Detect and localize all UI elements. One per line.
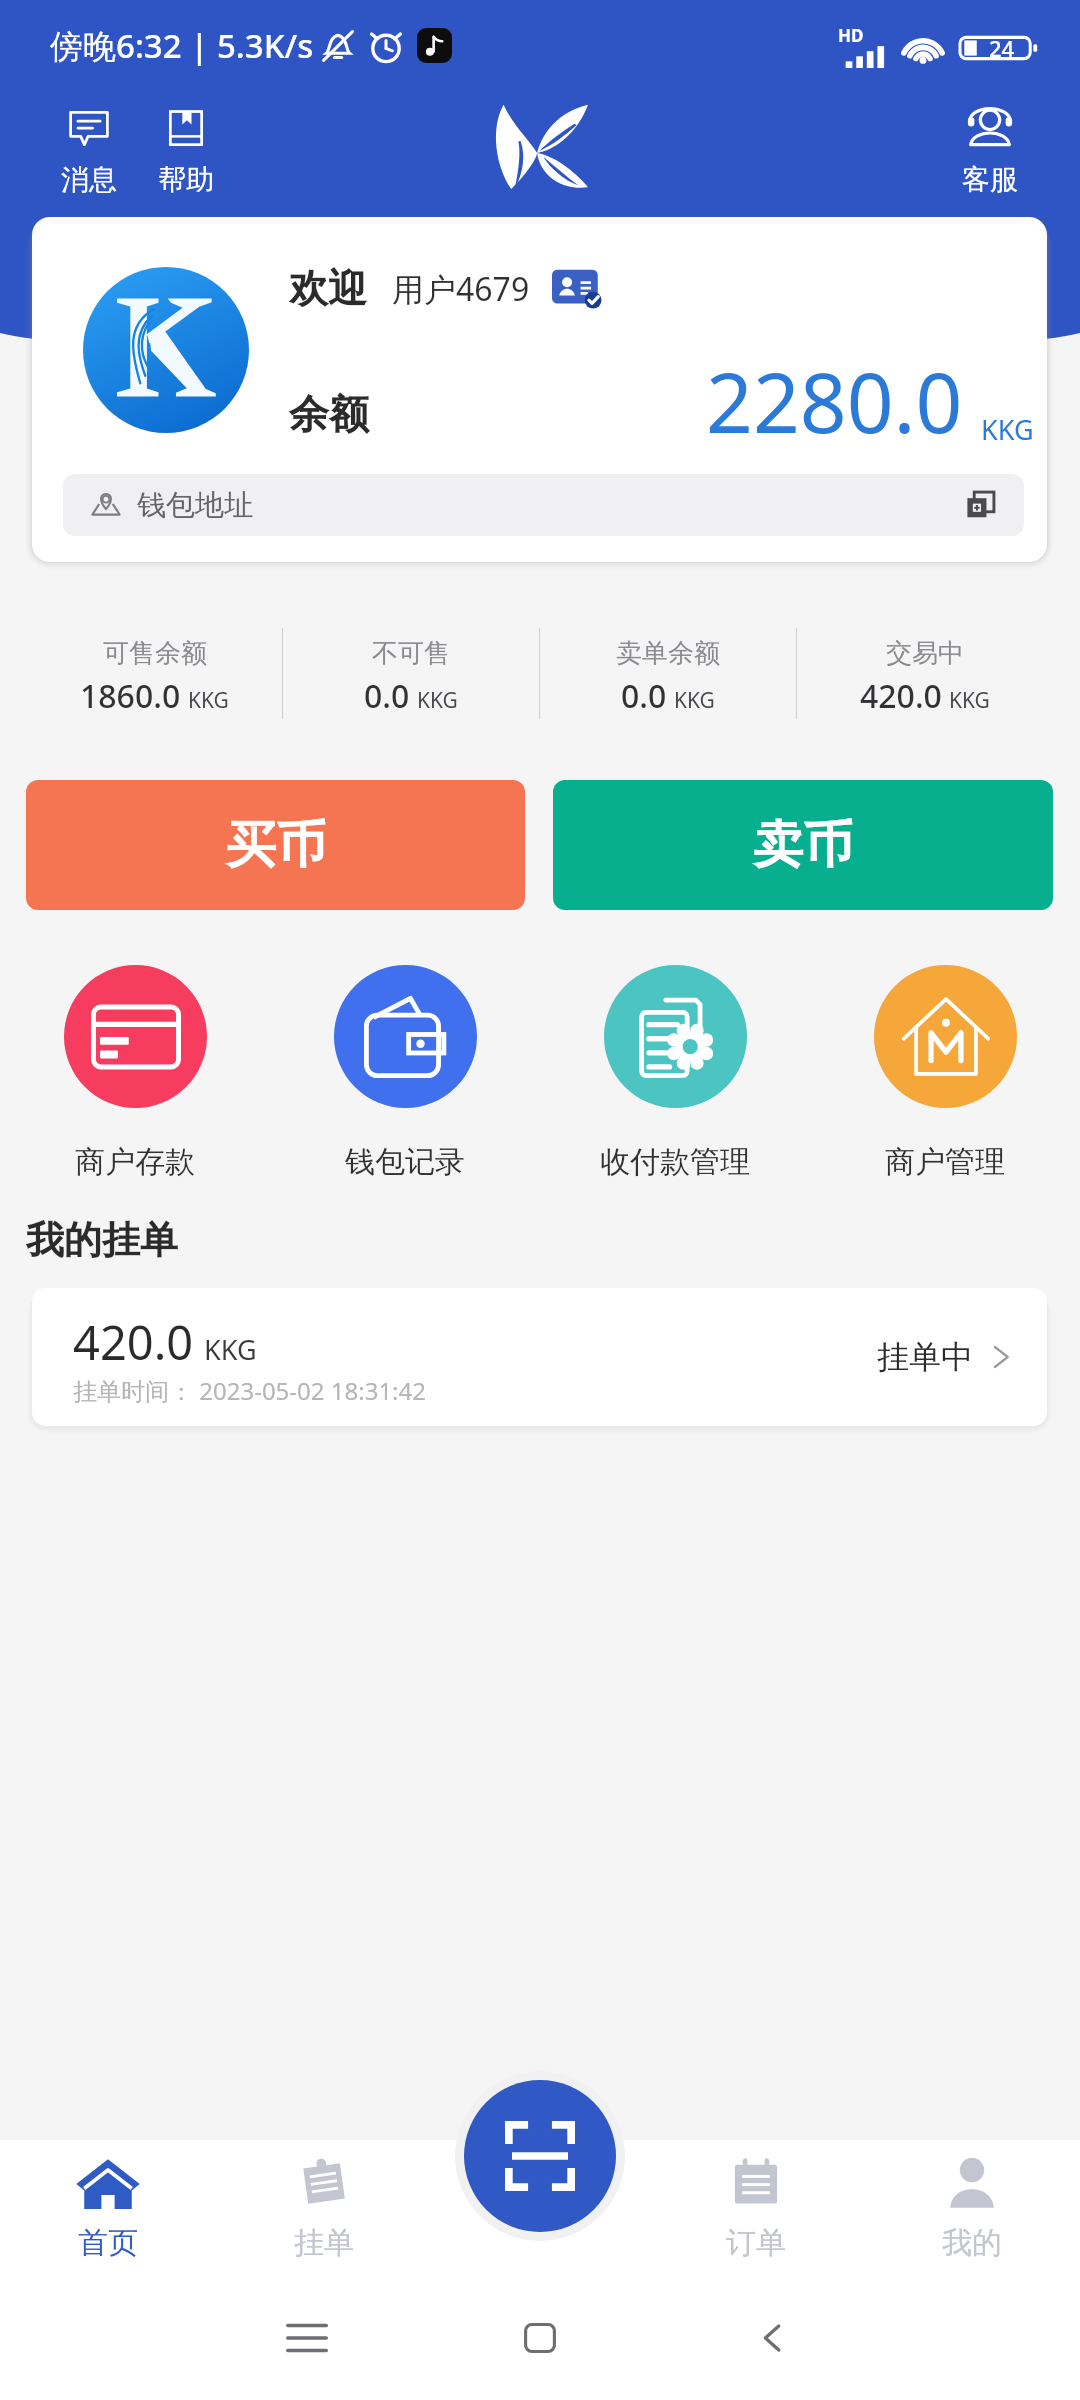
staticText: 钱包地址: [137, 487, 253, 524]
staticText: KKG: [674, 686, 715, 715]
other: Home: [516, 2314, 564, 2362]
staticText: 消息: [61, 162, 117, 197]
staticText: 420.0: [860, 674, 942, 718]
button[interactable]: 卖币: [553, 780, 1053, 910]
staticText: KKG: [188, 686, 229, 715]
staticText: 余额: [289, 389, 369, 439]
staticText: 挂单时间： 2023-05-02 18:31:42: [73, 1374, 426, 1407]
staticText: 帮助: [158, 162, 214, 197]
staticText: 420.0: [73, 1310, 194, 1374]
button[interactable]: 帮助: [156, 106, 216, 197]
staticText: 不可售: [372, 637, 450, 670]
button[interactable]: 420.0: [32, 1288, 1047, 1426]
other: Recents: [283, 2314, 331, 2362]
staticText: KKG: [417, 686, 458, 715]
button[interactable]: 订单: [648, 2140, 864, 2278]
staticText: 收付款管理: [600, 1143, 750, 1181]
staticText: KKG: [949, 686, 990, 715]
staticText: 0.0: [364, 674, 410, 718]
button[interactable]: 我的: [864, 2140, 1080, 2278]
staticText: 卖币: [753, 814, 853, 877]
button[interactable]: Scan QR code: [464, 2080, 616, 2232]
button[interactable]: 商户管理: [810, 965, 1080, 1181]
staticText: 钱包记录: [345, 1143, 465, 1181]
staticText: 用户4679: [392, 267, 530, 311]
button[interactable]: 钱包记录: [270, 965, 540, 1181]
staticText: 卖单余额: [616, 637, 720, 670]
staticText: 傍晚6:32 | 5.3K/s: [50, 23, 314, 68]
staticText: 2280.0: [706, 345, 963, 457]
staticText: 交易中: [886, 637, 964, 670]
staticText: KKG: [981, 411, 1034, 448]
staticText: 挂单: [294, 2224, 354, 2262]
staticText: 挂单中: [877, 1337, 973, 1377]
staticText: HD: [838, 24, 864, 47]
button[interactable]: 钱包地址: [63, 474, 1024, 536]
other: Copy: [964, 488, 998, 522]
staticText: KKG: [204, 1331, 257, 1368]
staticText: 24: [989, 33, 1015, 63]
staticText: 客服: [962, 162, 1018, 197]
staticText: 可售余额: [103, 637, 207, 670]
button[interactable]: 商户存款: [0, 965, 270, 1181]
staticText: 我的: [942, 2224, 1002, 2262]
staticText: 首页: [78, 2224, 138, 2262]
button[interactable]: 客服: [960, 106, 1020, 197]
staticText: 商户管理: [885, 1143, 1005, 1181]
other: Back: [749, 2314, 797, 2362]
staticText: 1860.0: [80, 674, 181, 718]
staticText: 订单: [726, 2224, 786, 2262]
button[interactable]: 首页: [0, 2140, 216, 2278]
staticText: 欢迎: [289, 264, 367, 313]
button[interactable]: 消息: [59, 106, 119, 197]
button[interactable]: 收付款管理: [540, 965, 810, 1181]
staticText: 商户存款: [75, 1143, 195, 1181]
staticText: 买币: [226, 814, 326, 877]
staticText: 我的挂单: [26, 1216, 178, 1264]
staticText: 0.0: [621, 674, 667, 718]
button[interactable]: 挂单: [216, 2140, 432, 2278]
button[interactable]: 买币: [26, 780, 525, 910]
